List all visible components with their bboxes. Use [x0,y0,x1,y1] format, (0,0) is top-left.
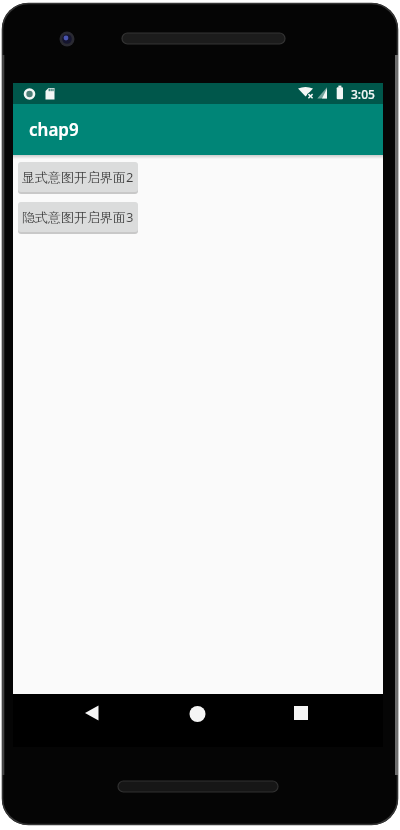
button[interactable] [70,698,130,728]
staticText: 3:05 [351,86,375,102]
button[interactable]: 显式意图开启界面2 [18,162,138,192]
button[interactable]: 隐式意图开启界面3 [18,202,138,232]
button[interactable] [265,698,325,728]
staticText: chap9 [29,118,79,141]
staticText: 显式意图开启界面2 [22,168,134,186]
button[interactable] [168,698,228,728]
staticText: 隐式意图开启界面3 [22,208,134,226]
